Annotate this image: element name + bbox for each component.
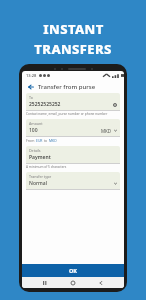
staticText: Payment [29,154,51,161]
button[interactable]: Amount [26,119,120,136]
staticText: A minimum of 5 characters [26,165,67,169]
button[interactable]: OK [22,264,124,277]
staticText: Contact name, email, purse number or pho… [26,112,108,116]
staticText: 25252525252 [29,101,61,108]
staticText: 100 [29,127,38,134]
button[interactable]: To [26,93,120,110]
button[interactable]: Transfer type [26,172,120,189]
button[interactable]: Details [26,146,120,163]
button[interactable]: Back [96,278,106,288]
button[interactable]: Back [26,82,36,92]
staticText: Normal [29,180,47,187]
staticText: INSTANT [43,20,104,38]
button[interactable]: Home [68,278,78,288]
staticText: to [43,138,49,143]
staticText: Transfer type [29,174,52,179]
staticText: Details [29,148,41,153]
staticText: To [29,95,33,100]
staticText: MKD [101,128,112,134]
staticText: MKD [49,138,57,143]
staticText: 13:28 [26,73,37,78]
staticText: Transfer from purse [38,83,96,91]
button[interactable]: Recents [40,278,50,288]
staticText: OK [69,267,78,274]
staticText: Amount [29,121,43,126]
staticText: From [26,138,36,143]
staticText: EUR [36,138,43,143]
staticText: TRANSFERS [34,40,112,58]
